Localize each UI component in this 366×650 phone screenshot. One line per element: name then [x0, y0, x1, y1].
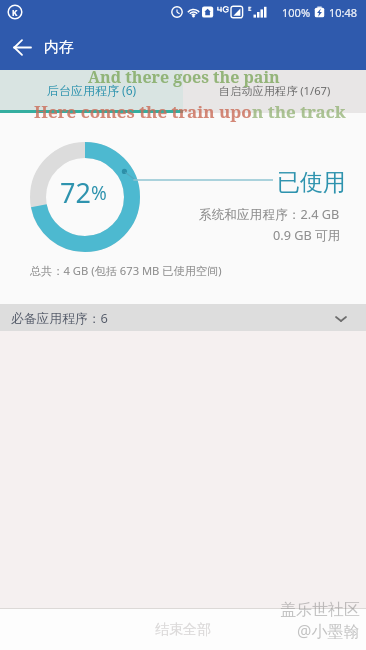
staticText: 结束全部 [155, 621, 211, 639]
staticText: 后台应用程序 (6) [47, 82, 137, 98]
staticText: K [12, 7, 18, 18]
staticText: 10:48 [329, 5, 358, 20]
staticText: 已使用 [277, 168, 346, 197]
staticText: 72 [60, 174, 91, 211]
staticText: 总共：4 GB (包括 673 MB 已使用空间) [30, 263, 222, 278]
staticText: n the track [252, 100, 346, 123]
staticText: 必备应用程序：6 [11, 309, 108, 326]
button[interactable]: Back [0, 25, 44, 69]
staticText: % [91, 180, 107, 206]
staticText: 0.9 GB 可用 [273, 226, 341, 243]
button[interactable]: 自启动应用程序 (1/67) [183, 70, 366, 110]
staticText: And there goes the pain [88, 66, 280, 88]
staticText: 内存 [44, 38, 74, 57]
staticText: @小墨翰 [297, 620, 360, 642]
staticText: 盖乐世社区 [280, 600, 360, 620]
staticText: 100% [282, 5, 311, 20]
button[interactable]: 必备应用程序：6 [0, 304, 366, 331]
button[interactable]: 结束全部 [0, 609, 366, 650]
staticText: 系统和应用程序：2.4 GB [199, 205, 340, 222]
staticText: Here comes the train upo [34, 100, 252, 123]
staticText: 自启动应用程序 (1/67) [219, 83, 331, 98]
button[interactable]: 后台应用程序 (6) [0, 70, 183, 110]
